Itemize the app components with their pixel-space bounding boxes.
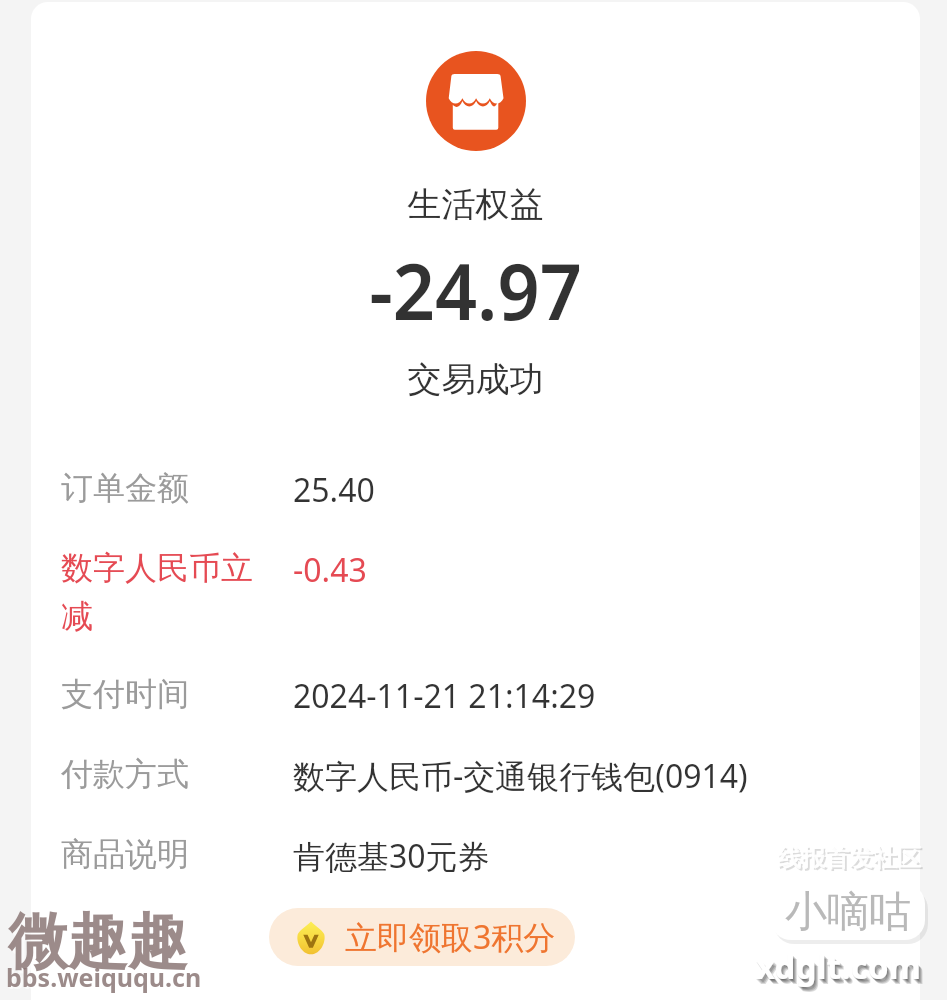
staticText: xdglt.com	[756, 944, 922, 989]
staticText: xdglt.com	[756, 945, 922, 990]
staticText: xdglt.com	[757, 946, 923, 991]
staticText: -24.97	[55, 237, 895, 343]
staticText: 线报首发社区	[779, 845, 923, 875]
staticText: 肯德基30元券	[293, 834, 490, 878]
staticText: xdglt.com	[760, 949, 926, 994]
staticText: 订单金额	[61, 468, 263, 508]
staticText: bbs.weiququ.cn	[6, 960, 202, 994]
staticText: xdglt.com	[759, 948, 925, 993]
staticText: 生活权益	[31, 183, 920, 226]
staticText: -0.43	[293, 548, 367, 592]
staticText: 数字人民币-交通银行钱包(0914)	[293, 754, 748, 798]
staticText: 微趣趣	[8, 904, 188, 980]
staticText: 2024-11-21 21:14:29	[293, 674, 596, 718]
staticText: 微趣趣	[11, 907, 191, 983]
staticText: 支付时间	[61, 674, 263, 714]
staticText: 线报首发社区	[777, 843, 921, 873]
staticText: 商品说明	[61, 834, 263, 874]
staticText: 交易成功	[31, 358, 920, 401]
staticText: 小嘀咕	[785, 886, 911, 939]
staticText: bbs.weiququ.cn	[8, 962, 204, 996]
button[interactable]: 立即领取3积分	[269, 908, 575, 966]
staticText: 数字人民币立减	[61, 548, 263, 636]
staticText: 25.40	[293, 468, 375, 512]
staticText: 立即领取3积分	[345, 915, 556, 959]
staticText: 付款方式	[61, 754, 263, 794]
staticText: xdglt.com	[758, 947, 924, 992]
other: 生活权益	[426, 51, 526, 151]
